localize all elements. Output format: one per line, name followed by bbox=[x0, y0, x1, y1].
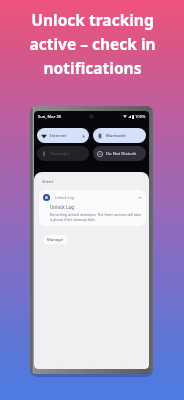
staticText: Unlock Log bbox=[55, 195, 74, 200]
staticText: Do Not Disturb bbox=[106, 151, 137, 157]
staticText: Sun, Mar 30 bbox=[38, 114, 62, 120]
button[interactable]: Flashlight bbox=[37, 146, 89, 161]
staticText: Recording unlock attempts. The front cam… bbox=[50, 212, 142, 222]
staticText: Unlock tracking active – check in notifi… bbox=[29, 9, 156, 78]
staticText: Manage bbox=[47, 237, 64, 243]
staticText: Silent bbox=[42, 179, 53, 185]
button[interactable]: Bluetooth bbox=[93, 128, 146, 143]
staticText: Internet bbox=[50, 133, 67, 139]
button[interactable]: Unlock Log bbox=[39, 190, 146, 226]
other: Collapse notification bbox=[138, 196, 142, 200]
staticText: Bluetooth bbox=[106, 133, 126, 139]
staticText: 100% bbox=[135, 114, 146, 120]
button[interactable]: Manage bbox=[43, 235, 68, 244]
staticText: Flashlight bbox=[50, 151, 70, 157]
staticText: Unlock Log bbox=[50, 204, 75, 210]
button[interactable]: Do Not Disturb bbox=[93, 146, 146, 161]
button[interactable]: Internet bbox=[37, 128, 89, 143]
